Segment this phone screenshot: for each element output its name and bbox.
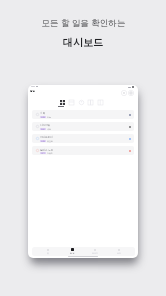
staticText: 대기 [41,152,45,154]
staticText: 할 일 [70,252,75,255]
staticText: 내일 [47,128,51,130]
staticText: 홈 [47,252,49,254]
button[interactable]: Tab 3 [77,98,86,107]
staticText: 릴리스 노트 [40,148,54,151]
button[interactable]: Profile [128,90,134,96]
staticText: 모든 할 일을 확인하는 [41,17,126,29]
button[interactable]: Nav 1 [41,247,55,256]
button[interactable]: Tab 5 [96,98,105,107]
button[interactable]: Tab 2 [67,98,76,107]
button[interactable]: Nav 3 [88,247,102,256]
button[interactable]: Tab 1 [58,98,67,107]
staticText: 할일 [30,90,35,93]
staticText: 디자인팀 [40,124,50,127]
button[interactable]: Tab 4 [86,98,95,107]
button[interactable]: Search [121,90,127,96]
staticText: 다음주 [47,152,53,154]
button[interactable]: 릴리스 노트 [32,146,134,155]
button[interactable]: Nav 4 [112,247,126,256]
staticText: 캘린더 [92,252,98,254]
staticText: 인터뷰준비 [40,136,53,139]
button[interactable]: 인터뷰준비 [32,134,134,143]
button[interactable]: Nav 2 [65,247,79,256]
staticText: 기획 [40,112,45,115]
staticText: 진행 [41,116,45,118]
staticText: 금요일 [47,140,53,142]
button[interactable]: 기획 [32,110,134,119]
staticText: 대시보드 [63,36,103,49]
staticText: 설정 [117,252,121,254]
button[interactable]: 디자인팀 [32,122,134,131]
staticText: 진행 [41,140,45,142]
staticText: 오늘 [47,116,51,118]
staticText: 검토 [41,128,45,130]
